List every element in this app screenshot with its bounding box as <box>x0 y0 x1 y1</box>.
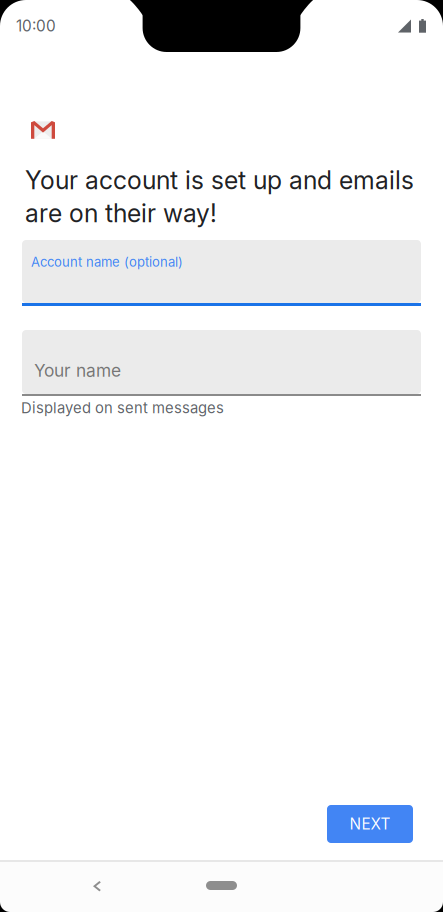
staticText: 10:00 <box>16 17 56 35</box>
staticText: are on their way! <box>25 198 217 228</box>
button[interactable]: Back <box>75 866 119 907</box>
staticText: Account name (optional) <box>31 254 183 270</box>
staticText: NEXT <box>349 815 390 833</box>
button[interactable]: NEXT <box>327 805 413 843</box>
staticText: Your account is set up and emails <box>25 165 414 195</box>
staticText: Displayed on sent messages <box>21 399 224 417</box>
button[interactable]: Home <box>184 865 259 906</box>
staticText: Your name <box>34 360 121 381</box>
